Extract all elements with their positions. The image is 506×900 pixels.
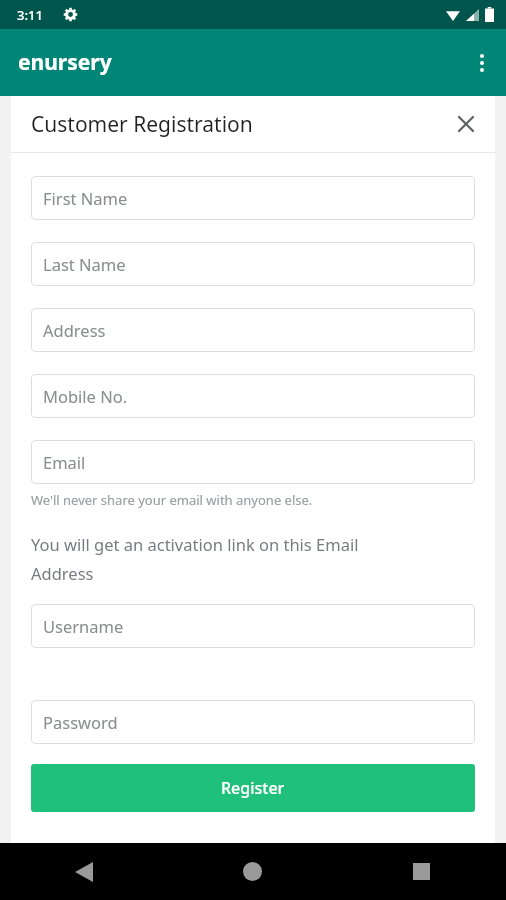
button[interactable]: Register xyxy=(31,764,475,812)
staticText: You will get an activation link on this … xyxy=(31,533,415,585)
staticText: enursery xyxy=(18,48,112,77)
button[interactable]: Back xyxy=(0,843,168,900)
button[interactable]: Recents xyxy=(337,843,506,900)
button[interactable]: Address xyxy=(31,308,475,352)
staticText: Address xyxy=(43,319,106,341)
button[interactable]: Mobile No. xyxy=(31,374,475,418)
button[interactable]: More options xyxy=(458,39,506,87)
staticText: We'll never share your email with anyone… xyxy=(31,491,313,509)
button[interactable]: Username xyxy=(31,604,475,648)
staticText: Customer Registration xyxy=(31,110,253,139)
button[interactable]: Home xyxy=(168,843,337,900)
staticText: First Name xyxy=(43,187,128,209)
staticText: 3:11 xyxy=(17,6,43,24)
staticText: Last Name xyxy=(43,253,126,275)
button[interactable]: Email xyxy=(31,440,475,484)
staticText: Register xyxy=(221,777,285,799)
staticText: Password xyxy=(43,711,118,733)
button[interactable]: Last Name xyxy=(31,242,475,286)
button[interactable]: First Name xyxy=(31,176,475,220)
staticText: Email xyxy=(43,451,86,473)
button[interactable]: Password xyxy=(31,700,475,744)
button[interactable]: Close xyxy=(447,105,485,143)
staticText: Username xyxy=(43,615,124,637)
staticText: Mobile No. xyxy=(43,385,128,407)
